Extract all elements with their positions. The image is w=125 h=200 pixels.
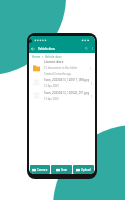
button[interactable]: Item options xyxy=(87,65,93,71)
button[interactable]: Home > Vehicle docs xyxy=(29,54,95,59)
button[interactable]: Upload xyxy=(73,165,94,174)
button[interactable]: More options xyxy=(90,46,95,51)
button[interactable]: Search xyxy=(83,45,90,52)
staticText: Scan_20230413_120011_008.jpg xyxy=(44,78,90,82)
staticText: Scan xyxy=(61,168,68,172)
button[interactable]: Back xyxy=(29,45,36,52)
staticText: 13 Apr 2023 xyxy=(44,97,59,101)
staticText: 13 Apr 2023 xyxy=(44,84,59,88)
button[interactable]: Item options xyxy=(90,93,93,99)
staticText: Camera xyxy=(37,168,48,172)
button[interactable]: Licence docs xyxy=(29,60,95,76)
staticText: Upload xyxy=(81,168,91,172)
staticText: Licence docs xyxy=(44,60,64,64)
button[interactable]: Scan_20230413_120011_008.jpg xyxy=(29,76,95,89)
button[interactable]: Camera xyxy=(30,165,50,174)
button[interactable]: Scan_20230413_120022_011.jpg xyxy=(29,89,95,102)
staticText: 12 documents in this folder xyxy=(44,66,78,70)
button[interactable]: Scan xyxy=(51,165,72,174)
button[interactable]: Item options xyxy=(90,80,93,86)
staticText: Vehicle docs xyxy=(38,47,55,51)
staticText: Scan_20230413_120022_011.jpg xyxy=(44,91,90,95)
staticText: Home > Vehicle docs xyxy=(32,55,62,59)
staticText: Created 2 months ago xyxy=(44,72,72,76)
